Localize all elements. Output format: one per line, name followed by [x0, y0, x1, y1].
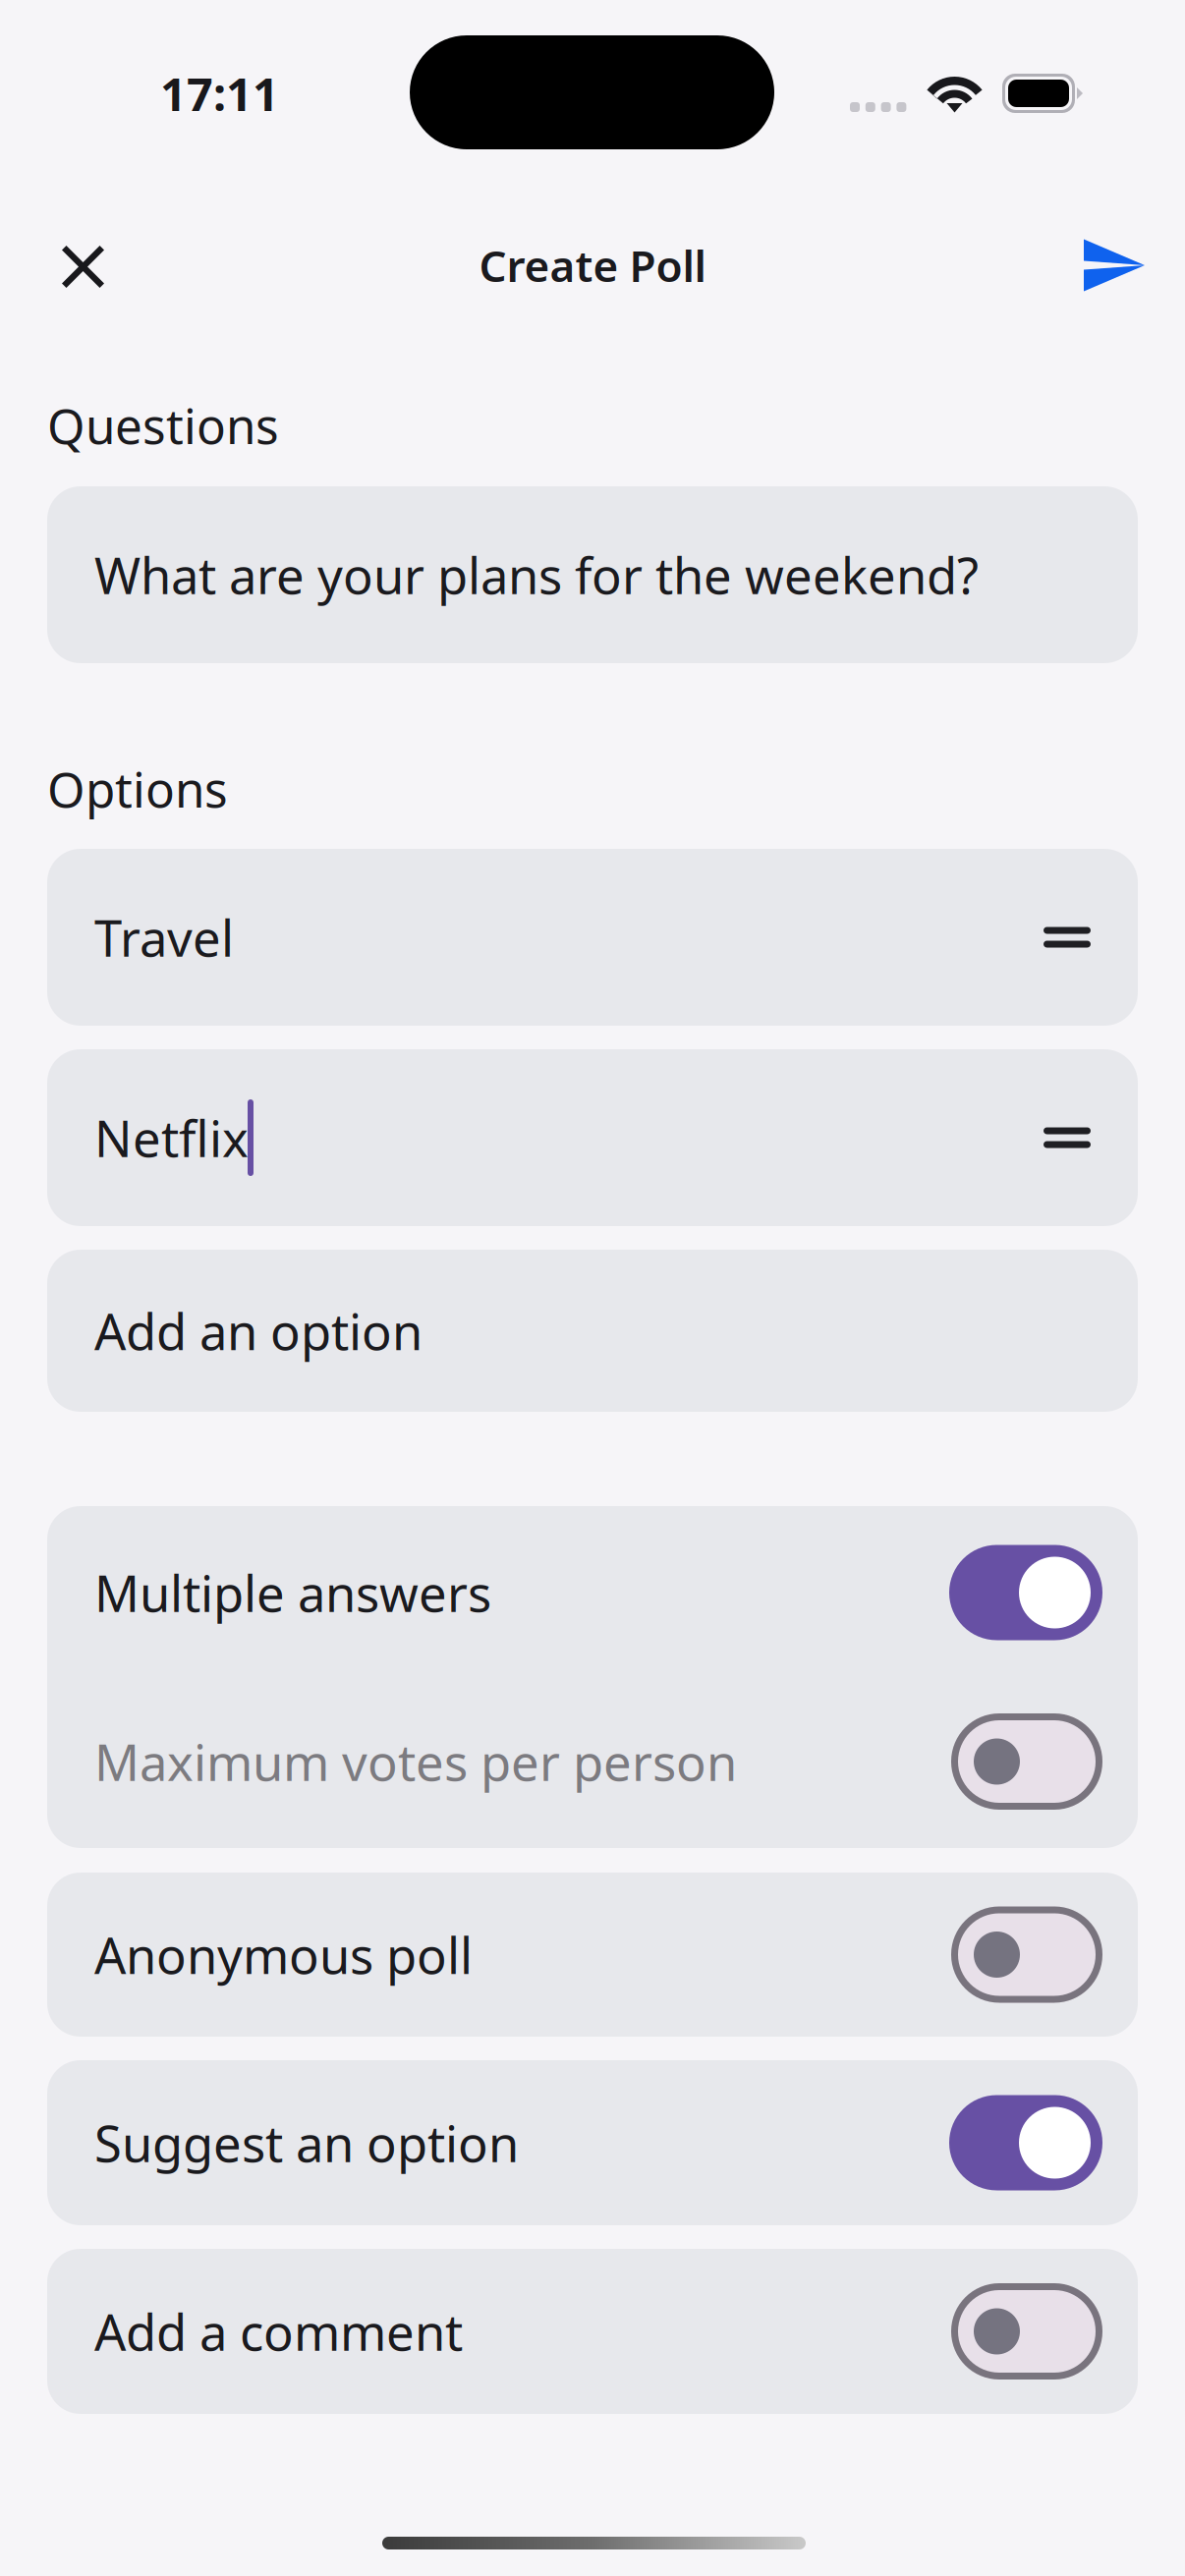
button[interactable]: Travel [47, 849, 1138, 1026]
button[interactable]: Anonymous poll [47, 1873, 1138, 2037]
button[interactable]: Add a comment [47, 2249, 1138, 2414]
button[interactable]: Suggest an option [47, 2060, 1138, 2225]
staticText: Add an option [94, 1298, 423, 1364]
staticText: Multiple answers [94, 1560, 491, 1626]
button[interactable]: Close [28, 214, 139, 320]
staticText: Maximum votes per person [94, 1729, 737, 1795]
staticText: Travel [94, 904, 234, 970]
staticText: Add a comment [94, 2298, 463, 2364]
staticText: Netflix [94, 1105, 249, 1171]
button[interactable]: Send [1059, 212, 1169, 318]
staticText: 17:11 [160, 63, 279, 124]
staticText: Anonymous poll [94, 1922, 473, 1988]
button[interactable]: Netflix [47, 1049, 1138, 1226]
staticText: Suggest an option [94, 2110, 519, 2176]
staticText: Options [47, 756, 228, 812]
staticText: Create Poll [479, 237, 706, 294]
staticText: Questions [47, 393, 279, 448]
button[interactable]: Multiple answers [47, 1508, 1138, 1677]
button[interactable]: Maximum votes per person [47, 1677, 1138, 1846]
button[interactable]: Add an option [47, 1250, 1138, 1412]
staticText: What are your plans for the weekend? [94, 542, 979, 608]
